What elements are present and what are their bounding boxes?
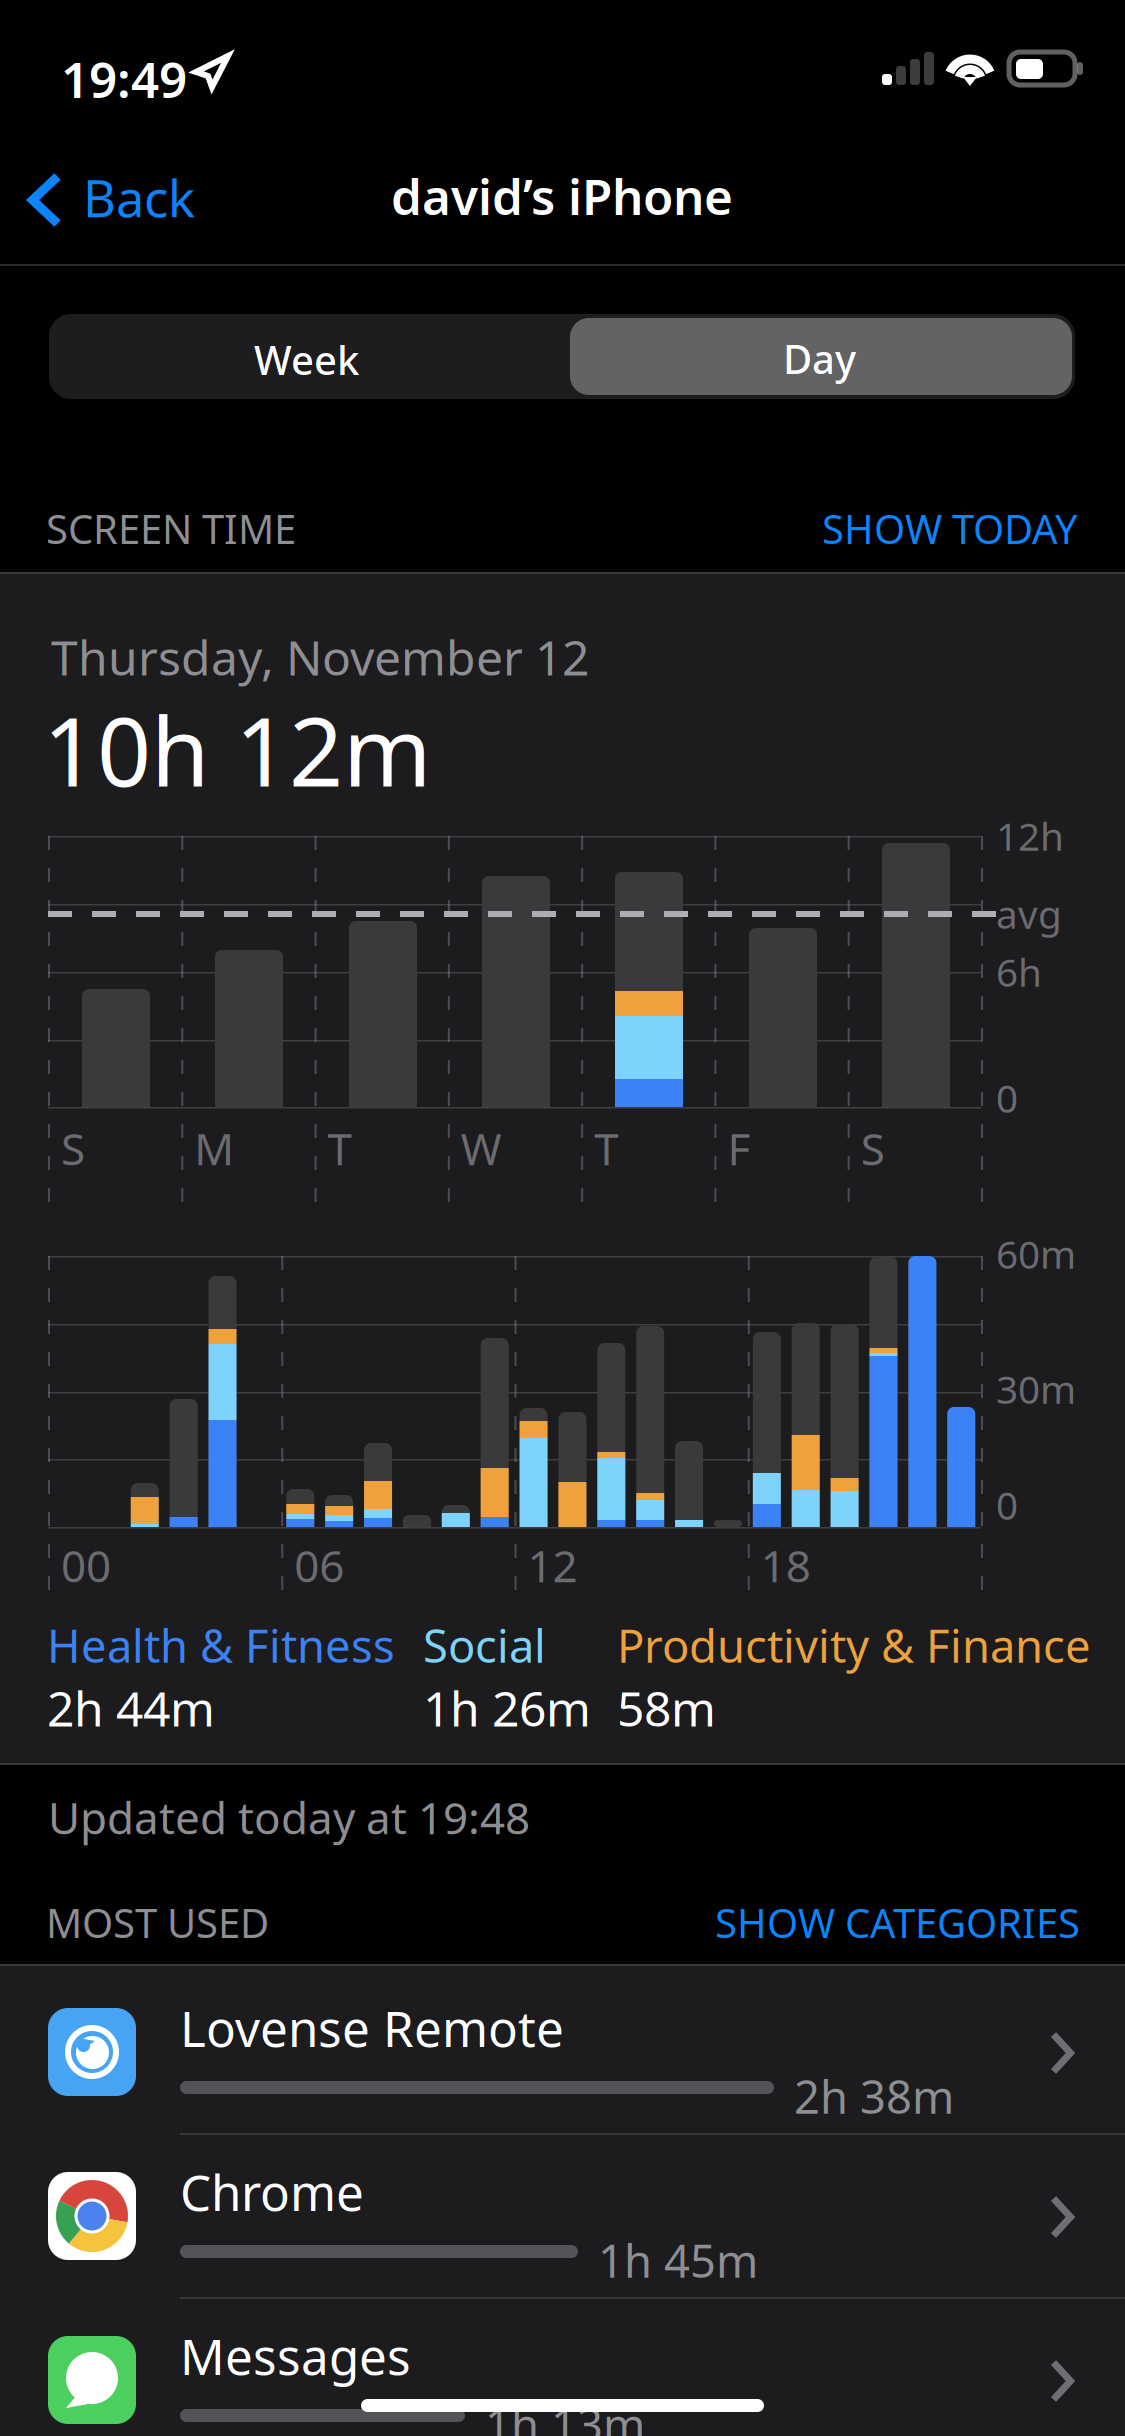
staticText: 12h xyxy=(996,810,1064,861)
button[interactable]: SHOW TODAY xyxy=(0,0,347,66)
staticText: Back xyxy=(83,164,195,231)
staticText: MOST USED xyxy=(46,1896,269,1949)
staticText: 30m xyxy=(996,1363,1076,1414)
staticText: Productivity & Finance xyxy=(617,1615,1091,1675)
staticText: Week xyxy=(254,333,359,386)
staticText: 0 xyxy=(996,1479,1018,1530)
staticText: david’s iPhone xyxy=(391,163,733,228)
staticText: 60m xyxy=(996,1228,1076,1279)
staticText: 06 xyxy=(294,1536,344,1594)
staticText: T xyxy=(594,1119,618,1177)
staticText: Health & Fitness xyxy=(47,1615,395,1675)
staticText: SHOW CATEGORIES xyxy=(715,1896,1080,1949)
button[interactable]: Messages xyxy=(0,0,1125,163)
staticText: Updated today at 19:48 xyxy=(48,1788,530,1846)
staticText: 19:49 xyxy=(61,46,187,111)
staticText: 12 xyxy=(527,1536,577,1594)
staticText: SHOW TODAY xyxy=(822,502,1078,555)
staticText: 18 xyxy=(761,1536,811,1594)
staticText: avg xyxy=(996,888,1062,939)
staticText: F xyxy=(727,1119,750,1177)
button[interactable]: Back xyxy=(0,0,240,118)
staticText: T xyxy=(328,1119,352,1177)
staticText: W xyxy=(461,1119,502,1177)
staticText: 1h 26m xyxy=(423,1676,591,1740)
staticText: Chrome xyxy=(180,2159,364,2224)
staticText: 0 xyxy=(996,1072,1018,1123)
staticText: 1h 45m xyxy=(598,2230,758,2290)
staticText: S xyxy=(61,1119,85,1177)
staticText: Day xyxy=(783,332,856,385)
staticText: 2h 44m xyxy=(47,1676,215,1740)
staticText: 10h 12m xyxy=(43,687,432,813)
staticText: SCREEN TIME xyxy=(46,502,296,555)
staticText: Lovense Remote xyxy=(180,1995,564,2060)
button[interactable]: SHOW CATEGORIES xyxy=(0,0,417,66)
staticText: S xyxy=(861,1119,885,1177)
staticText: 6h xyxy=(996,946,1042,997)
button[interactable]: Chrome xyxy=(0,0,1125,163)
staticText: 2h 38m xyxy=(794,2066,954,2126)
button[interactable]: Week xyxy=(0,0,518,85)
button[interactable]: Day xyxy=(0,0,502,77)
staticText: Social xyxy=(423,1615,546,1675)
staticText: M xyxy=(194,1119,234,1177)
staticText: 58m xyxy=(617,1676,716,1740)
staticText: Thursday, November 12 xyxy=(51,625,589,689)
button[interactable]: Lovense Remote xyxy=(0,0,1125,163)
staticText: 00 xyxy=(61,1536,111,1594)
staticText: 1h 13m xyxy=(485,2394,645,2436)
staticText: Messages xyxy=(180,2323,411,2388)
